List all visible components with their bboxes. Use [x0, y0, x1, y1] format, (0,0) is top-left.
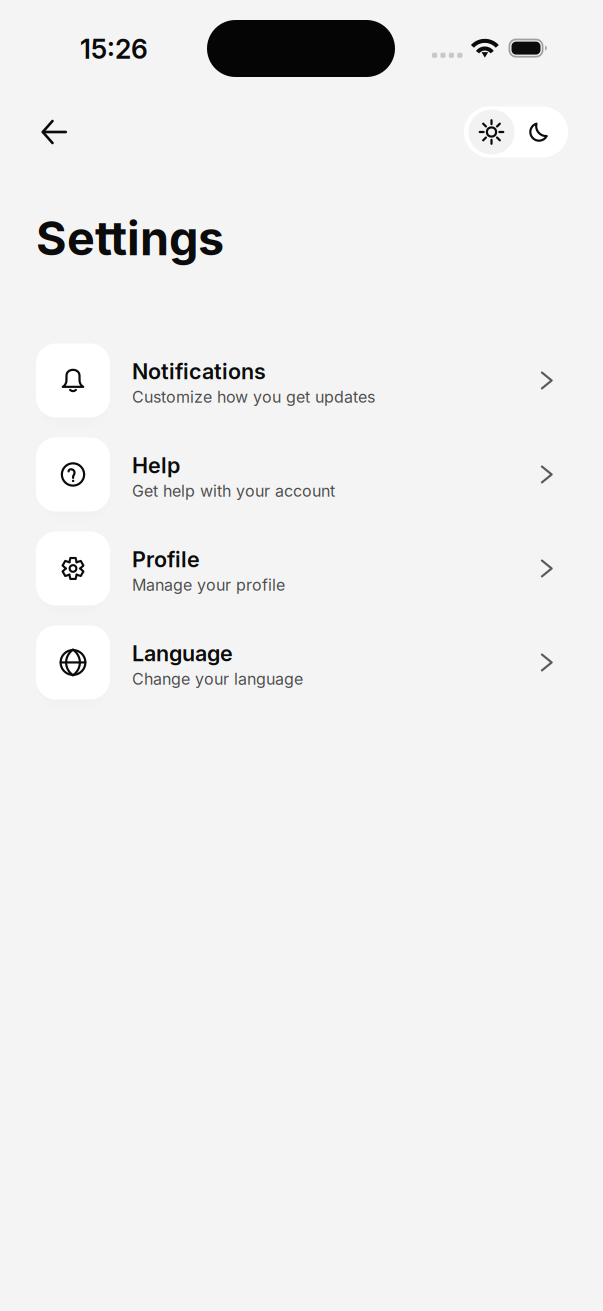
staticText: Notifications: [132, 358, 266, 384]
staticText: Get help with your account: [132, 481, 335, 501]
button[interactable]: Language: [36, 625, 567, 699]
button[interactable]: Light appearance: [468, 109, 514, 154]
button[interactable]: Dark appearance: [514, 109, 563, 154]
button[interactable]: Back: [32, 110, 76, 154]
button[interactable]: Notifications: [36, 343, 567, 417]
button[interactable]: Profile: [36, 531, 567, 605]
staticText: Language: [132, 640, 233, 666]
staticText: 15:26: [80, 33, 148, 65]
staticText: Profile: [132, 546, 200, 572]
button[interactable]: Help: [36, 437, 567, 511]
staticText: Settings: [36, 210, 224, 266]
staticText: Change your language: [132, 669, 303, 689]
staticText: Customize how you get updates: [132, 387, 375, 407]
staticText: Manage your profile: [132, 575, 285, 595]
staticText: Help: [132, 452, 180, 478]
